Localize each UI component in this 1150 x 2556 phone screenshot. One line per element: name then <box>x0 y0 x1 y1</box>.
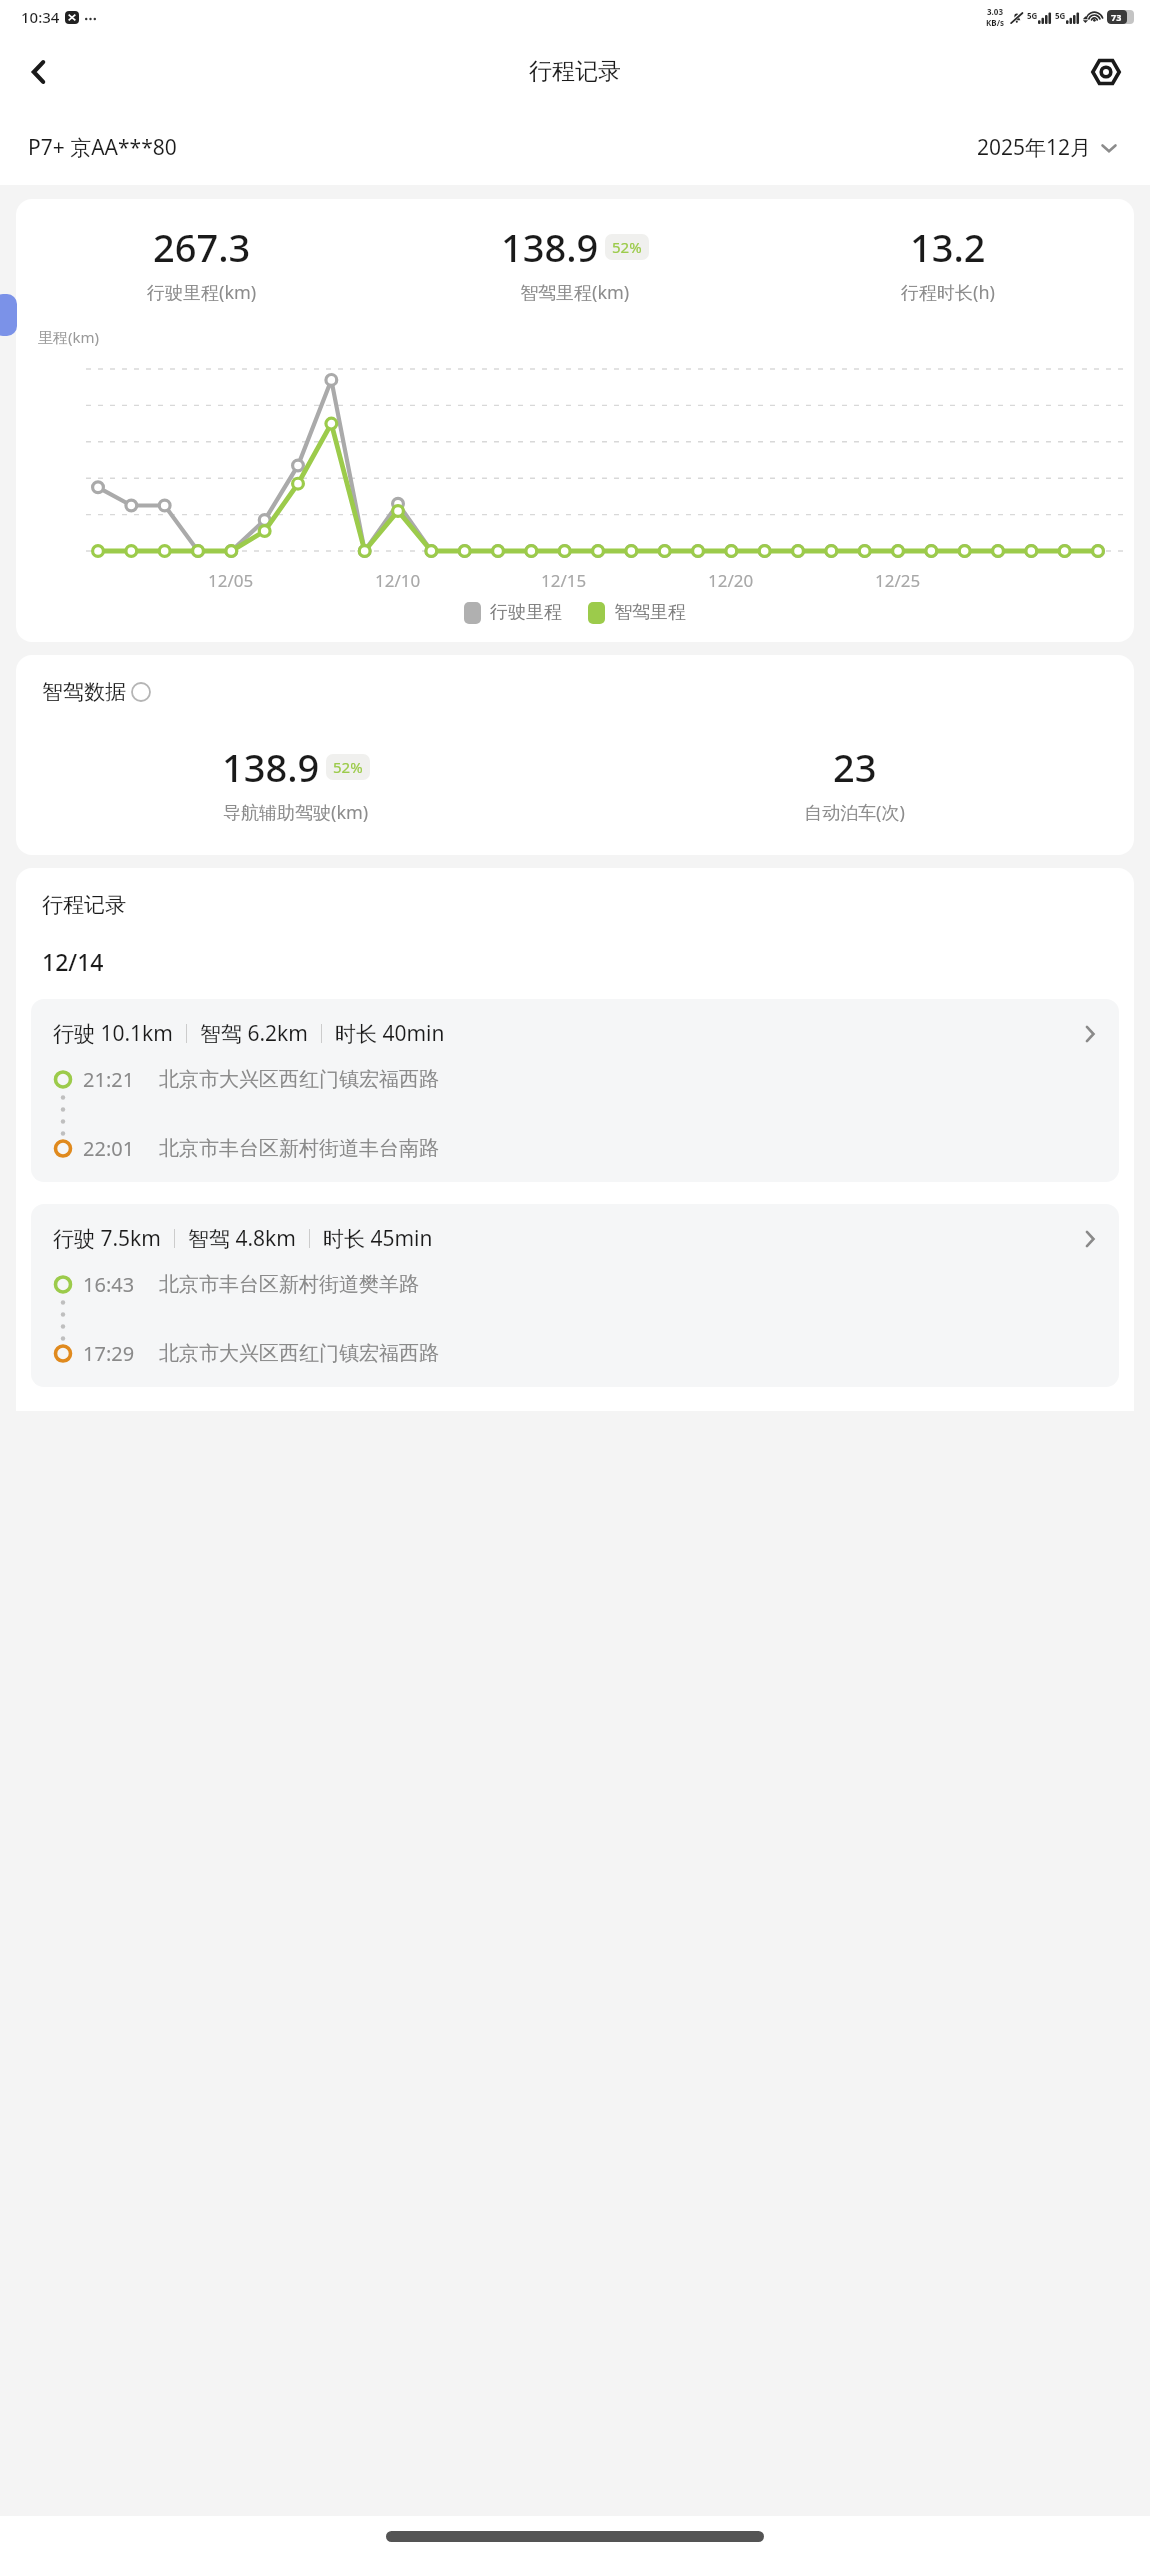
staticText: 5G <box>1055 10 1066 21</box>
staticText: 138.9 <box>501 221 599 273</box>
staticText: 12/14 <box>42 946 104 977</box>
staticText: 3.03 <box>987 6 1003 17</box>
staticText: 12/25 <box>875 569 921 592</box>
staticText: 17:29 <box>83 1340 135 1367</box>
staticText: 52% <box>333 757 363 777</box>
staticText: 智驾 4.8km <box>188 1224 296 1253</box>
staticText: 10:34 <box>21 7 60 27</box>
staticText: 13.2 <box>910 221 986 273</box>
staticText: 行程记录 <box>42 892 126 918</box>
staticText: 267.3 <box>153 221 251 273</box>
staticText: 12/10 <box>375 569 421 592</box>
staticText: 智驾里程 <box>614 601 686 624</box>
button[interactable]: Shortcut <box>0 294 17 336</box>
button[interactable]: 行驶里程 <box>464 601 562 624</box>
staticText: 智驾数据 <box>42 679 126 705</box>
staticText: 北京市丰台区新村街道丰台南路 <box>159 1136 439 1161</box>
staticText: 5G <box>1027 10 1038 21</box>
button[interactable]: 智驾里程 <box>588 601 686 624</box>
staticText: 北京市大兴区西红门镇宏福西路 <box>159 1067 439 1092</box>
staticText: 16:43 <box>83 1271 135 1298</box>
staticText: 里程(km) <box>38 327 100 347</box>
staticText: 52% <box>612 237 642 257</box>
staticText: 行程时长(h) <box>901 280 995 305</box>
button[interactable]: 2025年12月 <box>973 129 1122 166</box>
staticText: 行驶里程 <box>490 601 562 624</box>
staticText: 12/15 <box>541 569 587 592</box>
staticText: 12/20 <box>708 569 754 592</box>
button[interactable]: 智驾数据 <box>42 679 151 705</box>
staticText: 智驾 6.2km <box>200 1019 308 1048</box>
staticText: 行驶 7.5km <box>53 1224 161 1253</box>
button[interactable]: Settings <box>1080 46 1132 98</box>
staticText: P7+ 京AA***80 <box>28 133 177 162</box>
staticText: 138.9 <box>222 741 320 793</box>
staticText: 导航辅助驾驶(km) <box>223 800 369 825</box>
staticText: 22:01 <box>83 1135 135 1162</box>
staticText: 自动泊车(次) <box>804 800 905 825</box>
staticText: 12/05 <box>208 569 254 592</box>
staticText: 23 <box>833 741 877 793</box>
staticText: 行驶 10.1km <box>53 1019 173 1048</box>
staticText: 北京市丰台区新村街道樊羊路 <box>159 1272 419 1297</box>
staticText: 2025年12月 <box>977 133 1092 162</box>
staticText: 73 <box>1111 11 1122 23</box>
button[interactable]: 行驶 10.1km <box>31 999 1119 1182</box>
staticText: 时长 40min <box>335 1019 445 1048</box>
staticText: 北京市大兴区西红门镇宏福西路 <box>159 1341 439 1366</box>
staticText: 行驶里程(km) <box>147 280 257 305</box>
staticText: 21:21 <box>83 1066 135 1093</box>
staticText: KB/s <box>986 17 1004 28</box>
staticText: 时长 45min <box>323 1224 433 1253</box>
button[interactable]: Back <box>12 45 66 99</box>
button[interactable]: 行驶 7.5km <box>31 1204 1119 1387</box>
staticText: 行程记录 <box>529 57 621 86</box>
staticText: 智驾里程(km) <box>520 280 630 305</box>
